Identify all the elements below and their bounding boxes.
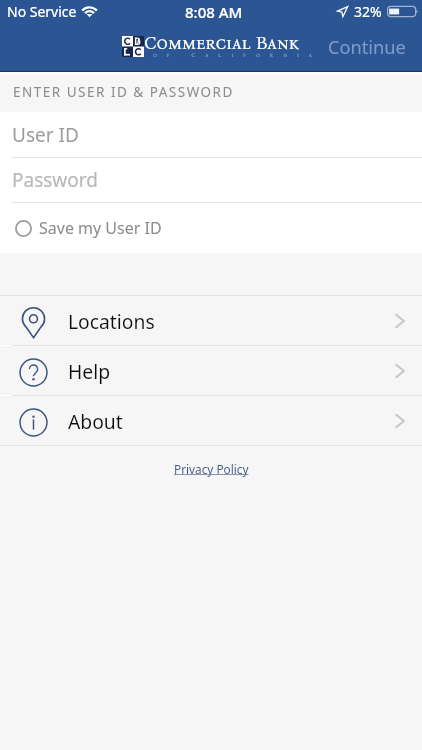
staticText: About (68, 408, 123, 434)
button[interactable]: Password (0, 158, 422, 202)
staticText: ENTER USER ID & PASSWORD (13, 83, 234, 101)
staticText: Password (12, 167, 98, 193)
button[interactable]: User ID (0, 112, 422, 157)
button[interactable]: Continue (316, 25, 422, 70)
staticText: of California (153, 51, 322, 58)
button[interactable]: Save my User ID (0, 203, 422, 253)
staticText: Continue (328, 35, 406, 60)
button[interactable]: Help (0, 346, 422, 395)
staticText: Save my User ID (39, 217, 162, 239)
staticText: Commercial Bank (144, 33, 300, 54)
staticText: User ID (12, 122, 79, 148)
staticText: 32% (354, 2, 382, 21)
staticText: Locations (68, 308, 155, 334)
button[interactable]: Locations (0, 296, 422, 345)
button[interactable]: Privacy Policy (166, 455, 257, 483)
staticText: Privacy Policy (174, 461, 249, 477)
staticText: 8:08 AM (185, 2, 243, 22)
button[interactable]: About (0, 396, 422, 445)
staticText: Help (68, 358, 111, 384)
staticText: No Service (7, 2, 77, 21)
